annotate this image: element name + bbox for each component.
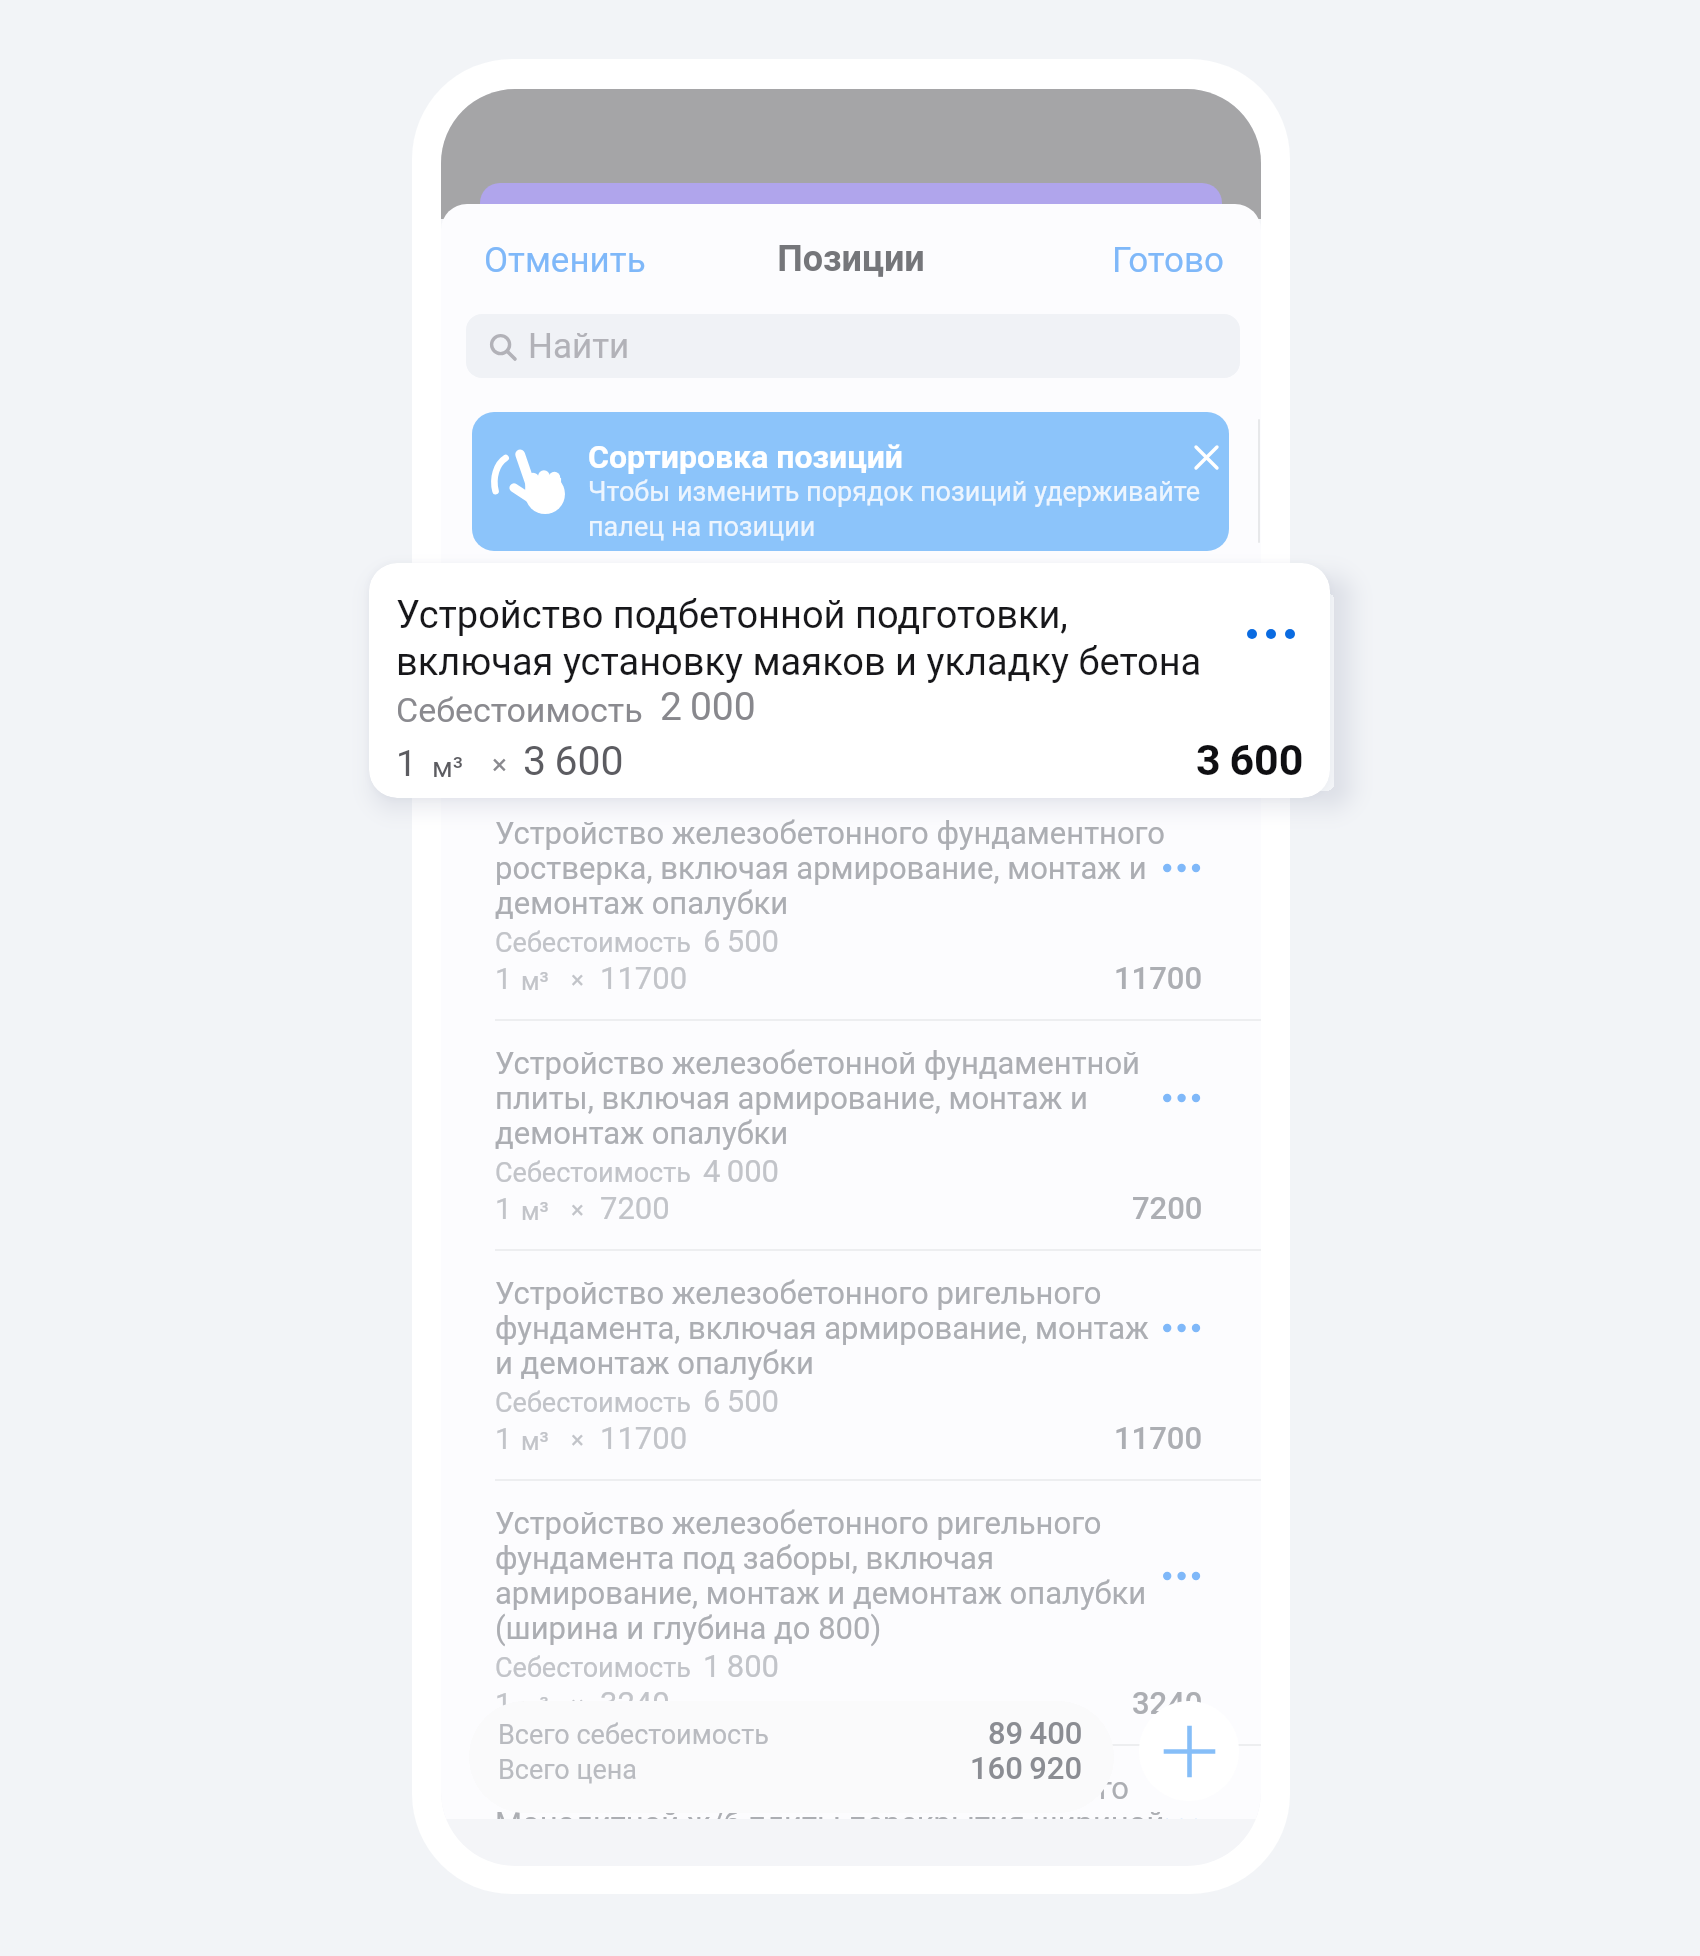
staticText: Себестоимость xyxy=(495,1652,691,1684)
staticText: Чтобы изменить порядок позиций удерживай… xyxy=(588,476,1213,542)
staticText: 1 xyxy=(396,742,417,785)
staticText: м³ xyxy=(521,1197,549,1226)
staticText: Отменить xyxy=(484,240,646,281)
button[interactable]: Отменить xyxy=(484,240,646,281)
staticText: ростверка, включая армирование, монтаж и xyxy=(495,850,1147,886)
staticText: м³ xyxy=(521,737,549,766)
staticText: демонтаж опалубки xyxy=(495,1115,789,1151)
button[interactable]: Устройство монолитного железобетонного xyxy=(441,1764,1261,1819)
staticText: Устройство железобетонной фундаментной xyxy=(495,1045,1140,1081)
staticText: 6 500 xyxy=(703,923,780,959)
button[interactable]: Устройство железобетонного фундаментного xyxy=(441,809,1261,1039)
button[interactable]: Ещё xyxy=(1155,1808,1207,1819)
staticText: 7200 xyxy=(600,1190,670,1226)
staticText: 3 600 xyxy=(1196,735,1304,785)
staticText: Позиции xyxy=(441,238,1261,280)
staticText: 11700 xyxy=(1114,1420,1203,1456)
staticText: 11700 xyxy=(600,960,688,996)
staticText: 6 500 xyxy=(703,1383,780,1419)
staticText: × xyxy=(492,748,507,781)
staticText: 2 000 xyxy=(703,693,780,729)
button[interactable]: Ещё xyxy=(1155,1083,1207,1113)
staticText: × xyxy=(571,736,584,764)
staticText: Себестоимость xyxy=(396,690,643,730)
staticText: 160 920 xyxy=(970,1750,1083,1786)
staticText: Устройство подбетонной подготовки, xyxy=(495,620,1044,656)
staticText: Готово xyxy=(1112,240,1224,281)
staticText: 1 xyxy=(495,1421,512,1456)
staticText: Устройство подбетонной подготовки, xyxy=(396,593,1068,638)
staticText: Себестоимость xyxy=(495,1157,691,1189)
staticText: 3 600 xyxy=(523,737,624,785)
staticText: Устройство монолитного железобетонного xyxy=(495,1770,1130,1806)
staticText: Всего цена xyxy=(498,1754,638,1786)
staticText: включая установку маяков и укладку бетон… xyxy=(396,640,1202,685)
staticText: Устройство железобетонного фундаментного xyxy=(495,815,1165,851)
staticText: 3600 xyxy=(600,730,670,766)
button[interactable]: Ещё xyxy=(1155,1313,1207,1343)
staticText: фундамента под заборы, включая xyxy=(495,1540,994,1576)
staticText: 3240 xyxy=(600,1685,670,1721)
staticText: Устройство железобетонного ригельного xyxy=(495,1275,1102,1311)
button[interactable]: Устройство железобетонного ригельного xyxy=(441,1499,1261,1764)
staticText: 1 xyxy=(495,1191,512,1226)
button[interactable]: Ещё xyxy=(1155,853,1207,883)
button[interactable]: Всего себестоимость xyxy=(469,1701,1114,1813)
staticText: Сортировка позиций xyxy=(588,438,903,476)
button[interactable]: Сортировка позиций xyxy=(472,412,1229,551)
button[interactable]: Найти xyxy=(466,314,1240,378)
staticText: Устройство железобетонного ригельного xyxy=(495,1505,1102,1541)
staticText: 3600 xyxy=(1132,730,1203,766)
staticText: м³ xyxy=(521,1427,549,1456)
staticText: 7200 xyxy=(1132,1190,1203,1226)
staticText: 1 xyxy=(495,1686,512,1721)
staticText: × xyxy=(571,1196,584,1224)
staticText: м³ xyxy=(521,967,549,996)
staticText: Себестоимость xyxy=(495,697,691,729)
button[interactable]: Устройство железобетонного ригельного xyxy=(441,1269,1261,1499)
button[interactable]: Устройство подбетонной подготовки, xyxy=(441,614,1261,809)
button[interactable]: Ещё xyxy=(1155,1561,1207,1591)
staticText: 1 xyxy=(495,731,512,766)
button[interactable]: Устройство подбетонной подготовки, xyxy=(369,563,1330,798)
staticText: м³ xyxy=(432,751,464,784)
staticText: фундамента, включая армирование, монтаж xyxy=(495,1310,1149,1346)
button[interactable]: Ещё xyxy=(1234,614,1308,654)
staticText: 11700 xyxy=(1114,960,1203,996)
staticText: плиты, включая армирование, монтаж и xyxy=(495,1080,1088,1116)
staticText: Найти xyxy=(528,326,630,367)
staticText: 1 800 xyxy=(703,1648,780,1684)
button[interactable]: Устройство железобетонной фундаментной xyxy=(441,1039,1261,1269)
staticText: Себестоимость xyxy=(495,927,691,959)
staticText: 1 xyxy=(495,961,512,996)
staticText: и демонтаж опалубки xyxy=(495,1345,814,1381)
staticText: армирование, монтаж и демонтаж опалубки xyxy=(495,1575,1147,1611)
staticText: (ширина и глубина до 800) xyxy=(495,1610,882,1646)
staticText: 4 000 xyxy=(703,1153,780,1189)
staticText: 89 400 xyxy=(988,1715,1083,1751)
button[interactable]: Закрыть xyxy=(1185,436,1227,478)
staticText: Монолитной ж/б плиты перекрытия шириной xyxy=(495,1805,1165,1819)
button[interactable]: Готово xyxy=(1112,240,1224,281)
staticText: × xyxy=(571,966,584,994)
staticText: 2 000 xyxy=(660,684,756,730)
button[interactable]: Ещё xyxy=(1155,641,1207,671)
staticText: м³ xyxy=(521,1692,549,1721)
staticText: демонтаж опалубки xyxy=(495,885,789,921)
staticText: Себестоимость xyxy=(495,1387,691,1419)
button[interactable]: Добавить xyxy=(1139,1701,1239,1801)
staticText: включая установку маяков и укладку бетон… xyxy=(495,655,1152,691)
staticText: 3240 xyxy=(1132,1685,1203,1721)
staticText: 11700 xyxy=(600,1420,688,1456)
staticText: × xyxy=(571,1426,584,1454)
staticText: Всего себестоимость xyxy=(498,1719,769,1751)
staticText: × xyxy=(571,1691,584,1719)
